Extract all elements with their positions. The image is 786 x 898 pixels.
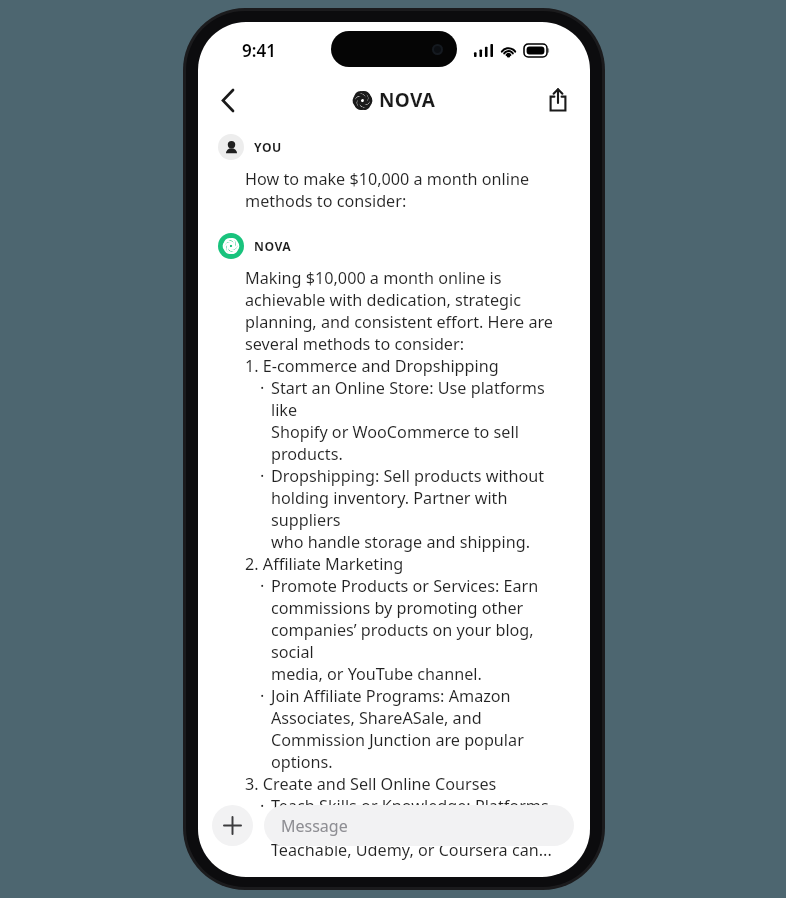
staticText: YOU (254, 139, 282, 156)
staticText: Teach Skills or Knowledge: Platforms lik… (271, 795, 570, 861)
staticText: Message (281, 815, 348, 837)
staticText: 9:41 (242, 39, 276, 62)
staticText: Dropshipping: Sell products without hold… (271, 465, 570, 553)
button[interactable]: Add attachment (212, 805, 253, 846)
staticText: 1. E-commerce and Dropshipping (245, 355, 499, 377)
staticText: 3. Create and Sell Online Courses (245, 773, 497, 795)
staticText: · (260, 795, 265, 817)
button[interactable]: NOVA (347, 83, 442, 117)
button[interactable]: Message (264, 805, 574, 846)
staticText: Making $10,000 a month online is achieva… (245, 267, 553, 355)
staticText: Promote Products or Services: Earn commi… (271, 575, 570, 685)
button[interactable]: Back (206, 78, 250, 122)
button[interactable]: Share (536, 78, 580, 122)
staticText: 2. Affiliate Marketing (245, 553, 404, 575)
staticText: · (260, 685, 265, 707)
staticText: NOVA (254, 238, 292, 255)
staticText: · (260, 575, 265, 597)
staticText: How to make $10,000 a month online metho… (245, 168, 530, 212)
staticText: Join Affiliate Programs: Amazon Associat… (271, 685, 524, 773)
staticText: · (260, 465, 265, 487)
staticText: Start an Online Store: Use platforms lik… (271, 377, 570, 465)
staticText: · (260, 377, 265, 399)
staticText: NOVA (379, 87, 436, 113)
